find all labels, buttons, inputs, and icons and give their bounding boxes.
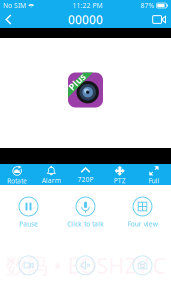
staticText: No SIM	[3, 1, 26, 10]
staticText: Pause	[19, 219, 38, 228]
button[interactable]: Record	[0, 256, 57, 275]
staticText: Full	[148, 176, 159, 185]
staticText: 11:22 PM	[72, 1, 102, 10]
button[interactable]: Pause	[0, 197, 57, 228]
staticText: 720P	[77, 175, 93, 184]
button[interactable]: Snapshot	[114, 256, 171, 275]
staticText: Four view	[127, 219, 157, 228]
button[interactable]: Rotate	[0, 164, 34, 185]
button[interactable]: Mute	[57, 256, 114, 275]
staticText: 数码 • EOSHZY.C	[5, 251, 165, 279]
staticText: Click to talk	[67, 219, 104, 228]
button[interactable]: Four view	[114, 197, 171, 228]
staticText: Plus	[67, 75, 87, 88]
button[interactable]: Record video	[145, 11, 171, 28]
button[interactable]: 720P	[68, 164, 103, 185]
button[interactable]: Alarm	[34, 164, 68, 185]
button[interactable]: Full	[137, 164, 171, 185]
button[interactable]: Click to talk	[57, 197, 114, 228]
staticText: Alarm	[42, 176, 61, 185]
staticText: 87%	[141, 1, 155, 10]
staticText: Rotate	[7, 176, 27, 185]
button[interactable]: PTZ	[103, 164, 137, 185]
staticText: 00000	[68, 11, 103, 27]
button[interactable]: Back	[0, 11, 19, 28]
staticText: PTZ	[114, 176, 126, 185]
